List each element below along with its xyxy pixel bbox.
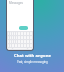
staticText: Messages	[9, 1, 23, 5]
staticText: Chat with anyone	[14, 53, 51, 59]
button[interactable]	[19, 26, 28, 30]
staticText: Fast, simple messaging	[17, 60, 48, 64]
button[interactable]: Messages	[7, 1, 33, 5]
